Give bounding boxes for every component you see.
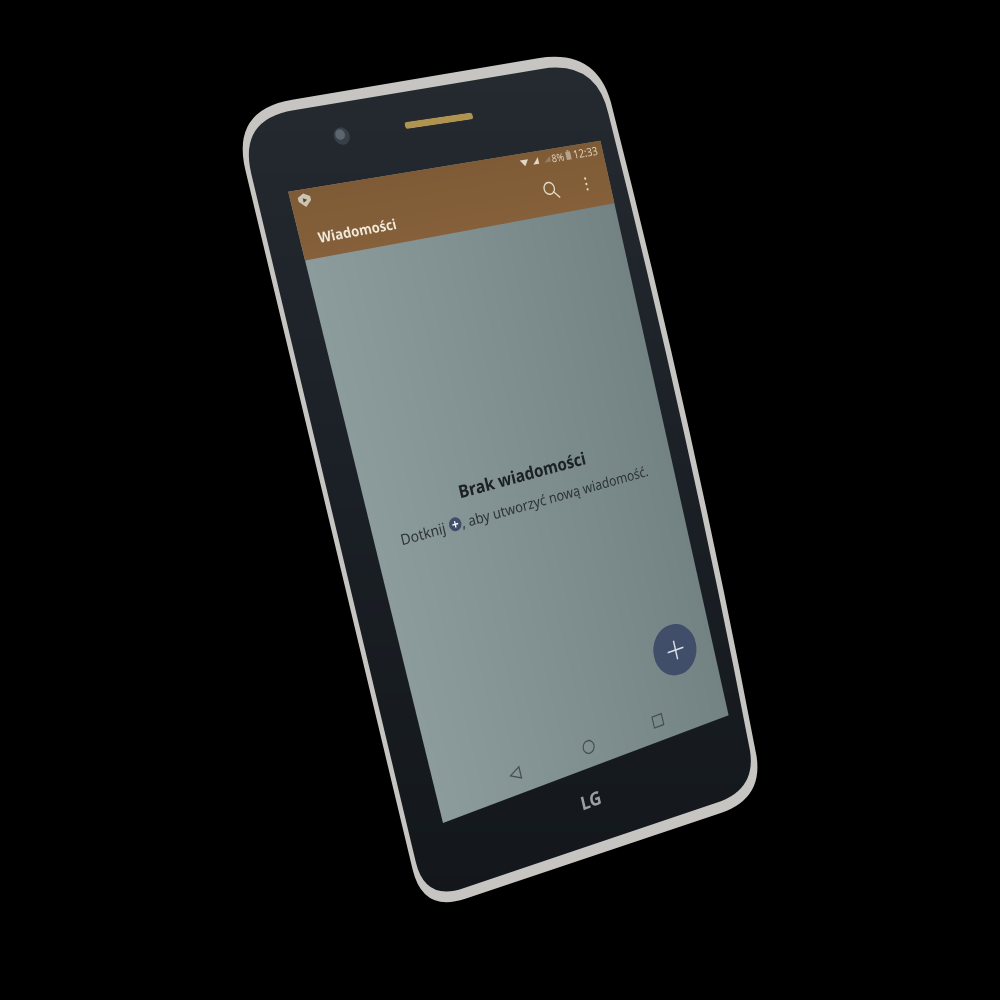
staticText: Dotknij (398, 516, 451, 549)
staticText: 8% (550, 149, 566, 165)
button[interactable]: Utwórz nową wiadomość (648, 618, 701, 682)
staticText: , aby utworzyć nową wiadomość. (459, 461, 650, 532)
staticText: LG (578, 784, 604, 816)
button[interactable]: Ostatnie aplikacje (637, 695, 679, 746)
staticText: Brak wiadomości (456, 446, 588, 504)
staticText: Wiadomości (316, 214, 399, 247)
button[interactable]: Szukaj (532, 170, 571, 211)
staticText: 12:33 (571, 142, 599, 162)
button[interactable]: Ekran główny (566, 720, 610, 773)
button[interactable]: Wstecz (491, 747, 538, 801)
button[interactable]: Więcej opcji (568, 165, 604, 203)
